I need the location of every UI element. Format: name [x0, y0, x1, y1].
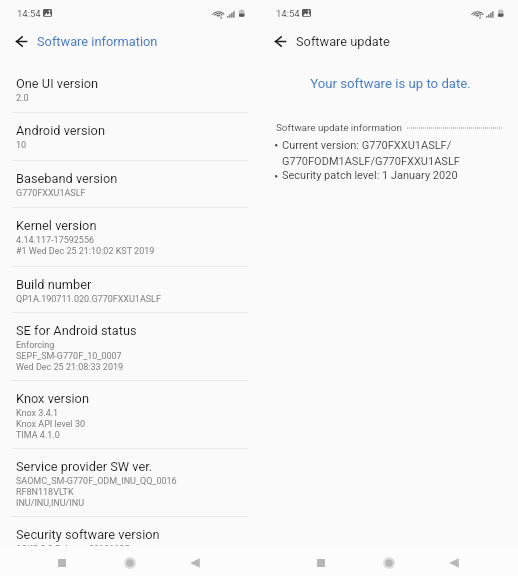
staticText: Software update — [296, 34, 390, 49]
staticText: 14:54 — [17, 8, 41, 19]
staticText: 14:54 — [276, 8, 300, 19]
staticText: SE for Android status — [16, 323, 137, 338]
staticText: 2.0 — [16, 93, 29, 104]
staticText: Android version — [16, 123, 105, 138]
staticText: RF8N118VLTK — [16, 487, 74, 498]
staticText: Knox version — [16, 391, 89, 406]
staticText: Service provider SW ver. — [16, 459, 153, 474]
staticText: Software information — [37, 34, 158, 49]
staticText: Security patch level: 1 January 2020 — [282, 169, 458, 182]
staticText: TIMA 4.1.0 — [16, 430, 60, 441]
button[interactable]: Build number — [0, 267, 259, 313]
staticText: Baseband version — [16, 171, 118, 186]
staticText: #1 Wed Dec 25 21:10:02 KST 2019 — [16, 246, 155, 257]
staticText: G770FODM1ASLF/G770FXXU1ASLF — [282, 155, 460, 168]
staticText: Wed Dec 25 21:08:33 2019 — [16, 362, 124, 373]
staticText: One UI version — [16, 76, 99, 91]
staticText: SAOMC_SM-G770F_ODM_INU_QQ_0016 — [16, 476, 177, 487]
button[interactable]: Knox version — [0, 381, 259, 449]
staticText: ASKS 2.0 Release 20191105 — [16, 544, 130, 555]
staticText: Software update information — [276, 122, 402, 134]
staticText: Your software is up to date. — [261, 76, 518, 91]
button[interactable]: Recents — [299, 548, 343, 576]
button[interactable]: Security software version — [0, 517, 259, 576]
button[interactable]: Kernel version — [0, 208, 259, 267]
button[interactable]: Navigate up — [264, 26, 297, 56]
button[interactable]: One UI version — [0, 66, 259, 113]
button[interactable]: Baseband version — [0, 161, 259, 208]
button[interactable]: SE for Android status — [0, 313, 259, 381]
button[interactable]: Navigate up — [5, 26, 38, 56]
button[interactable]: Home — [108, 548, 152, 576]
staticText: Build number — [16, 277, 92, 292]
staticText: Kernel version — [16, 218, 97, 233]
button[interactable]: Back — [432, 548, 476, 576]
staticText: SEPF_SM-G770F_10_0007 — [16, 351, 122, 362]
button[interactable]: Recents — [40, 548, 84, 576]
staticText: 4.14.117-17592556 — [16, 235, 95, 246]
staticText: QP1A.190711.020.G770FXXU1ASLF — [16, 294, 161, 305]
staticText: G770FXXU1ASLF — [16, 188, 86, 199]
staticText: Knox API level 30 — [16, 419, 85, 430]
staticText: INU/INU,INU/INU — [16, 498, 85, 509]
button[interactable]: Android version — [0, 113, 259, 161]
button[interactable]: Back — [173, 548, 217, 576]
staticText: Knox 3.4.1 — [16, 408, 59, 419]
staticText: Security software version — [16, 527, 160, 542]
button[interactable]: Service provider SW ver. — [0, 449, 259, 517]
staticText: 10 — [16, 140, 27, 151]
staticText: Enforcing — [16, 340, 55, 351]
staticText: Current version: G770FXXU1ASLF/ — [282, 139, 452, 152]
button[interactable]: Home — [367, 548, 411, 576]
